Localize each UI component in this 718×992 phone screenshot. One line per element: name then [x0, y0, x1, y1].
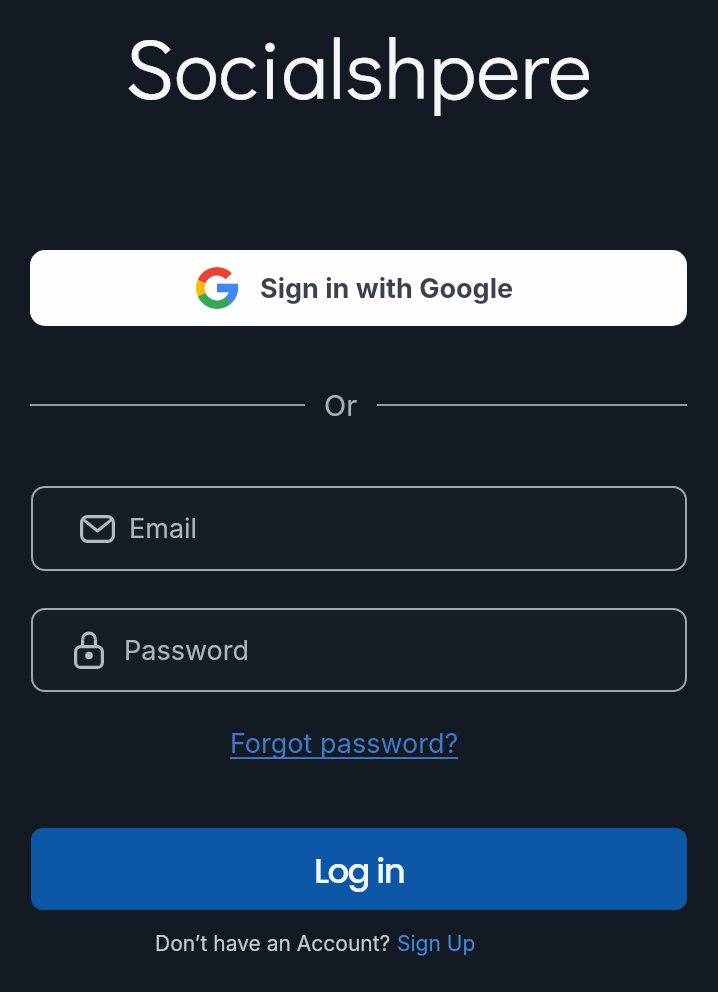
- button[interactable]: Forgot password?: [230, 727, 459, 760]
- button[interactable]: Sign in with Google: [30, 250, 687, 326]
- staticText: Socialshpere: [125, 11, 593, 121]
- button[interactable]: Log in: [31, 828, 687, 910]
- staticText: Or: [324, 388, 358, 423]
- button[interactable]: Password: [31, 608, 687, 692]
- button[interactable]: Sign Up: [397, 931, 476, 956]
- staticText: Log in: [314, 847, 405, 895]
- staticText: Don’t have an Account?: [155, 931, 397, 956]
- staticText: Password: [124, 634, 249, 667]
- staticText: Email: [129, 512, 198, 545]
- button[interactable]: Email: [31, 486, 687, 571]
- staticText: Sign in with Google: [260, 272, 514, 305]
